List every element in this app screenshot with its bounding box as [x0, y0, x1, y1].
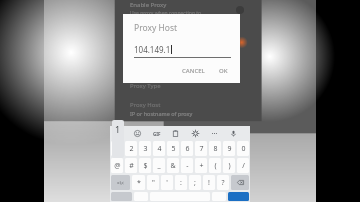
- staticText: ': [166, 178, 168, 188]
- button[interactable]: 7: [195, 141, 207, 156]
- button[interactable]: 1: [111, 141, 123, 156]
- staticText: ": [152, 178, 155, 188]
- staticText: Proxy Host: [130, 101, 161, 109]
- button[interactable]: Voice input: [228, 128, 239, 139]
- staticText: IP or hostname of proxy: [130, 110, 193, 117]
- staticText: Enable Proxy: [130, 1, 167, 9]
- button[interactable]: 4: [153, 141, 165, 156]
- staticText: @: [114, 161, 121, 171]
- button[interactable]: Enable proxy toggle: [236, 6, 244, 14]
- button[interactable]: GIF: [151, 128, 162, 139]
- button[interactable]: !: [203, 175, 215, 190]
- button[interactable]: =\<: [111, 175, 130, 190]
- staticText: 0: [241, 144, 246, 154]
- button[interactable]: Keyboard settings: [190, 128, 201, 139]
- staticText: Proxy Type: [130, 82, 161, 90]
- staticText: OK: [219, 67, 228, 75]
- button[interactable]: ?: [217, 175, 229, 190]
- button[interactable]: ;: [189, 175, 201, 190]
- staticText: &: [170, 161, 176, 171]
- button[interactable]: -: [181, 158, 193, 173]
- button[interactable]: More options: [209, 128, 220, 139]
- button[interactable]: @: [111, 158, 123, 173]
- button[interactable]: ": [147, 175, 159, 190]
- button[interactable]: 5: [167, 141, 179, 156]
- button[interactable]: 6: [181, 141, 193, 156]
- button[interactable]: $: [139, 158, 151, 173]
- button[interactable]: Clipboard: [170, 128, 181, 139]
- staticText: 4: [157, 144, 162, 154]
- button[interactable]: Key 1 preview: [112, 120, 124, 158]
- staticText: ?: [221, 178, 225, 188]
- staticText: $: [143, 161, 148, 171]
- button[interactable]: OK: [216, 65, 231, 77]
- staticText: (: [214, 161, 217, 171]
- staticText: CANCEL: [182, 67, 205, 75]
- staticText: :: [180, 178, 182, 188]
- button[interactable]: :: [175, 175, 187, 190]
- button[interactable]: &: [167, 158, 179, 173]
- staticText: -: [186, 161, 189, 171]
- staticText: _: [157, 161, 161, 171]
- button[interactable]: Backspace: [231, 175, 249, 190]
- staticText: 8: [213, 144, 218, 154]
- staticText: +: [199, 161, 204, 171]
- button[interactable]: Enter: [228, 192, 249, 201]
- staticText: GIF: [153, 131, 161, 137]
- staticText: 104.149.1: [134, 44, 171, 55]
- button[interactable]: ): [223, 158, 235, 173]
- button[interactable]: #: [125, 158, 137, 173]
- button[interactable]: *: [132, 175, 145, 190]
- staticText: 6: [185, 144, 190, 154]
- button[interactable]: (: [209, 158, 221, 173]
- staticText: ): [228, 161, 231, 171]
- staticText: Use proxy when connecting to: [130, 10, 202, 17]
- staticText: *: [137, 178, 141, 188]
- button[interactable]: Emoji: [132, 128, 143, 139]
- button[interactable]: 9: [223, 141, 235, 156]
- button[interactable]: 0: [237, 141, 249, 156]
- button[interactable]: _: [153, 158, 165, 173]
- button[interactable]: 3: [139, 141, 151, 156]
- staticText: 5: [171, 144, 176, 154]
- button[interactable]: /: [237, 158, 249, 173]
- staticText: !: [208, 178, 210, 188]
- staticText: ;: [194, 178, 196, 188]
- staticText: 2: [129, 144, 134, 154]
- button[interactable]: 8: [209, 141, 221, 156]
- button[interactable]: +: [195, 158, 207, 173]
- staticText: /: [242, 161, 245, 171]
- staticText: Proxy Host: [134, 22, 178, 34]
- button[interactable]: CANCEL: [179, 65, 208, 77]
- button[interactable]: ': [161, 175, 173, 190]
- staticText: 1: [115, 123, 121, 135]
- staticText: 9: [227, 144, 232, 154]
- staticText: 3: [143, 144, 148, 154]
- staticText: 7: [199, 144, 204, 154]
- staticText: #: [129, 161, 134, 171]
- button[interactable]: 2: [125, 141, 137, 156]
- staticText: =\<: [117, 180, 124, 186]
